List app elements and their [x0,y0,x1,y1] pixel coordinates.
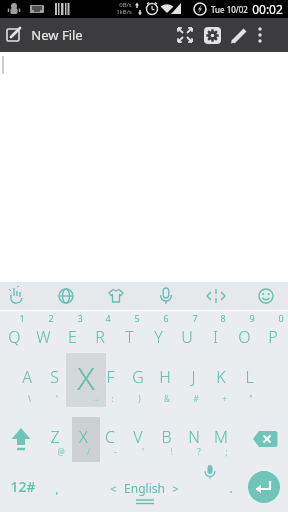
staticText: I [213,326,218,348]
button[interactable] [192,282,240,311]
button[interactable] [172,18,198,52]
staticText: C [105,426,115,448]
staticText: Q [8,326,21,348]
button[interactable]: Y [144,324,172,350]
staticText: U [181,326,193,348]
staticText: @ [57,446,65,457]
button[interactable]: S [41,364,67,390]
staticText: 3 [77,312,83,324]
staticText: + [222,393,227,404]
staticText: R [95,326,105,348]
staticText: P [268,326,278,348]
button[interactable] [0,282,48,311]
staticText: . [229,480,233,496]
staticText: 7 [192,312,198,324]
staticText: : [111,393,114,404]
button[interactable] [144,282,192,311]
button[interactable]: V [125,424,151,450]
staticText: 00:02 [252,1,283,17]
staticText: < [110,481,117,496]
staticText: O [238,326,251,348]
staticText: K [216,366,226,388]
button[interactable]: P [259,324,287,350]
staticText: > [172,481,179,496]
staticText: \ [28,393,31,404]
button[interactable] [240,282,288,311]
staticText: F [106,366,115,388]
button[interactable] [0,18,28,52]
button[interactable]: N [181,424,207,450]
button[interactable]: Z [42,424,68,450]
button[interactable]: M [208,424,234,450]
button[interactable]: R [86,324,114,350]
staticText: - [114,446,117,457]
staticText: " [249,393,253,404]
staticText: G [132,366,144,388]
button[interactable] [248,471,280,503]
button[interactable] [96,282,144,311]
staticText: 1kB/s [116,8,132,16]
staticText: ! [170,446,173,457]
button[interactable]: U [173,324,201,350]
staticText: 0 [278,312,284,324]
staticText: T [125,326,134,348]
staticText: W [36,326,51,348]
button[interactable]: C [97,424,123,450]
staticText: J [191,366,196,388]
button[interactable]: Q [0,324,28,350]
button[interactable]: . [223,478,239,498]
staticText: V [133,426,143,448]
staticText: Z [50,426,60,448]
button[interactable]: H [152,364,178,390]
staticText: New File [31,26,83,44]
staticText: M [214,426,228,448]
staticText: N [188,426,200,448]
button[interactable]: L [236,364,262,390]
button[interactable]: K [208,364,234,390]
button[interactable]: A [14,364,40,390]
staticText: 6 [163,312,169,324]
button[interactable]: 12# [3,474,43,498]
button[interactable]: X [70,424,96,450]
staticText: H [159,366,171,388]
button[interactable]: F [97,364,123,390]
staticText: 9 [249,312,255,324]
button[interactable]: B [153,424,179,450]
staticText: X [79,426,88,448]
staticText: ' [56,393,58,404]
button[interactable]: E [58,324,86,350]
button[interactable]: J [180,364,206,390]
button[interactable] [199,18,226,52]
staticText: English [124,480,165,496]
staticText: / [87,446,90,457]
button[interactable]: English [114,478,174,498]
button[interactable]: O [230,324,258,350]
staticText: 0B/s [119,1,132,9]
button[interactable]: T [115,324,143,350]
staticText: ... [93,392,100,402]
staticText: & [164,393,170,404]
staticText: # [193,393,199,404]
staticText: X [77,356,95,400]
button[interactable]: G [125,364,151,390]
staticText: L [245,366,254,388]
staticText: , [55,480,59,496]
staticText: 2 [48,312,54,324]
button[interactable] [246,410,288,462]
staticText: 8 [220,312,226,324]
staticText: 4 [105,312,111,324]
button[interactable]: , [49,478,65,498]
staticText: A [22,366,32,388]
button[interactable]: I [201,324,229,350]
button[interactable]: W [29,324,57,350]
staticText: 12# [10,477,36,496]
staticText: ) [138,393,141,404]
staticText: Tue 10/02 [211,4,248,15]
staticText: E [68,326,77,348]
button[interactable] [227,18,254,52]
button[interactable] [250,18,272,52]
staticText: ? [197,446,201,457]
button[interactable] [0,410,42,462]
button[interactable] [48,282,96,311]
staticText: Y [154,326,163,348]
